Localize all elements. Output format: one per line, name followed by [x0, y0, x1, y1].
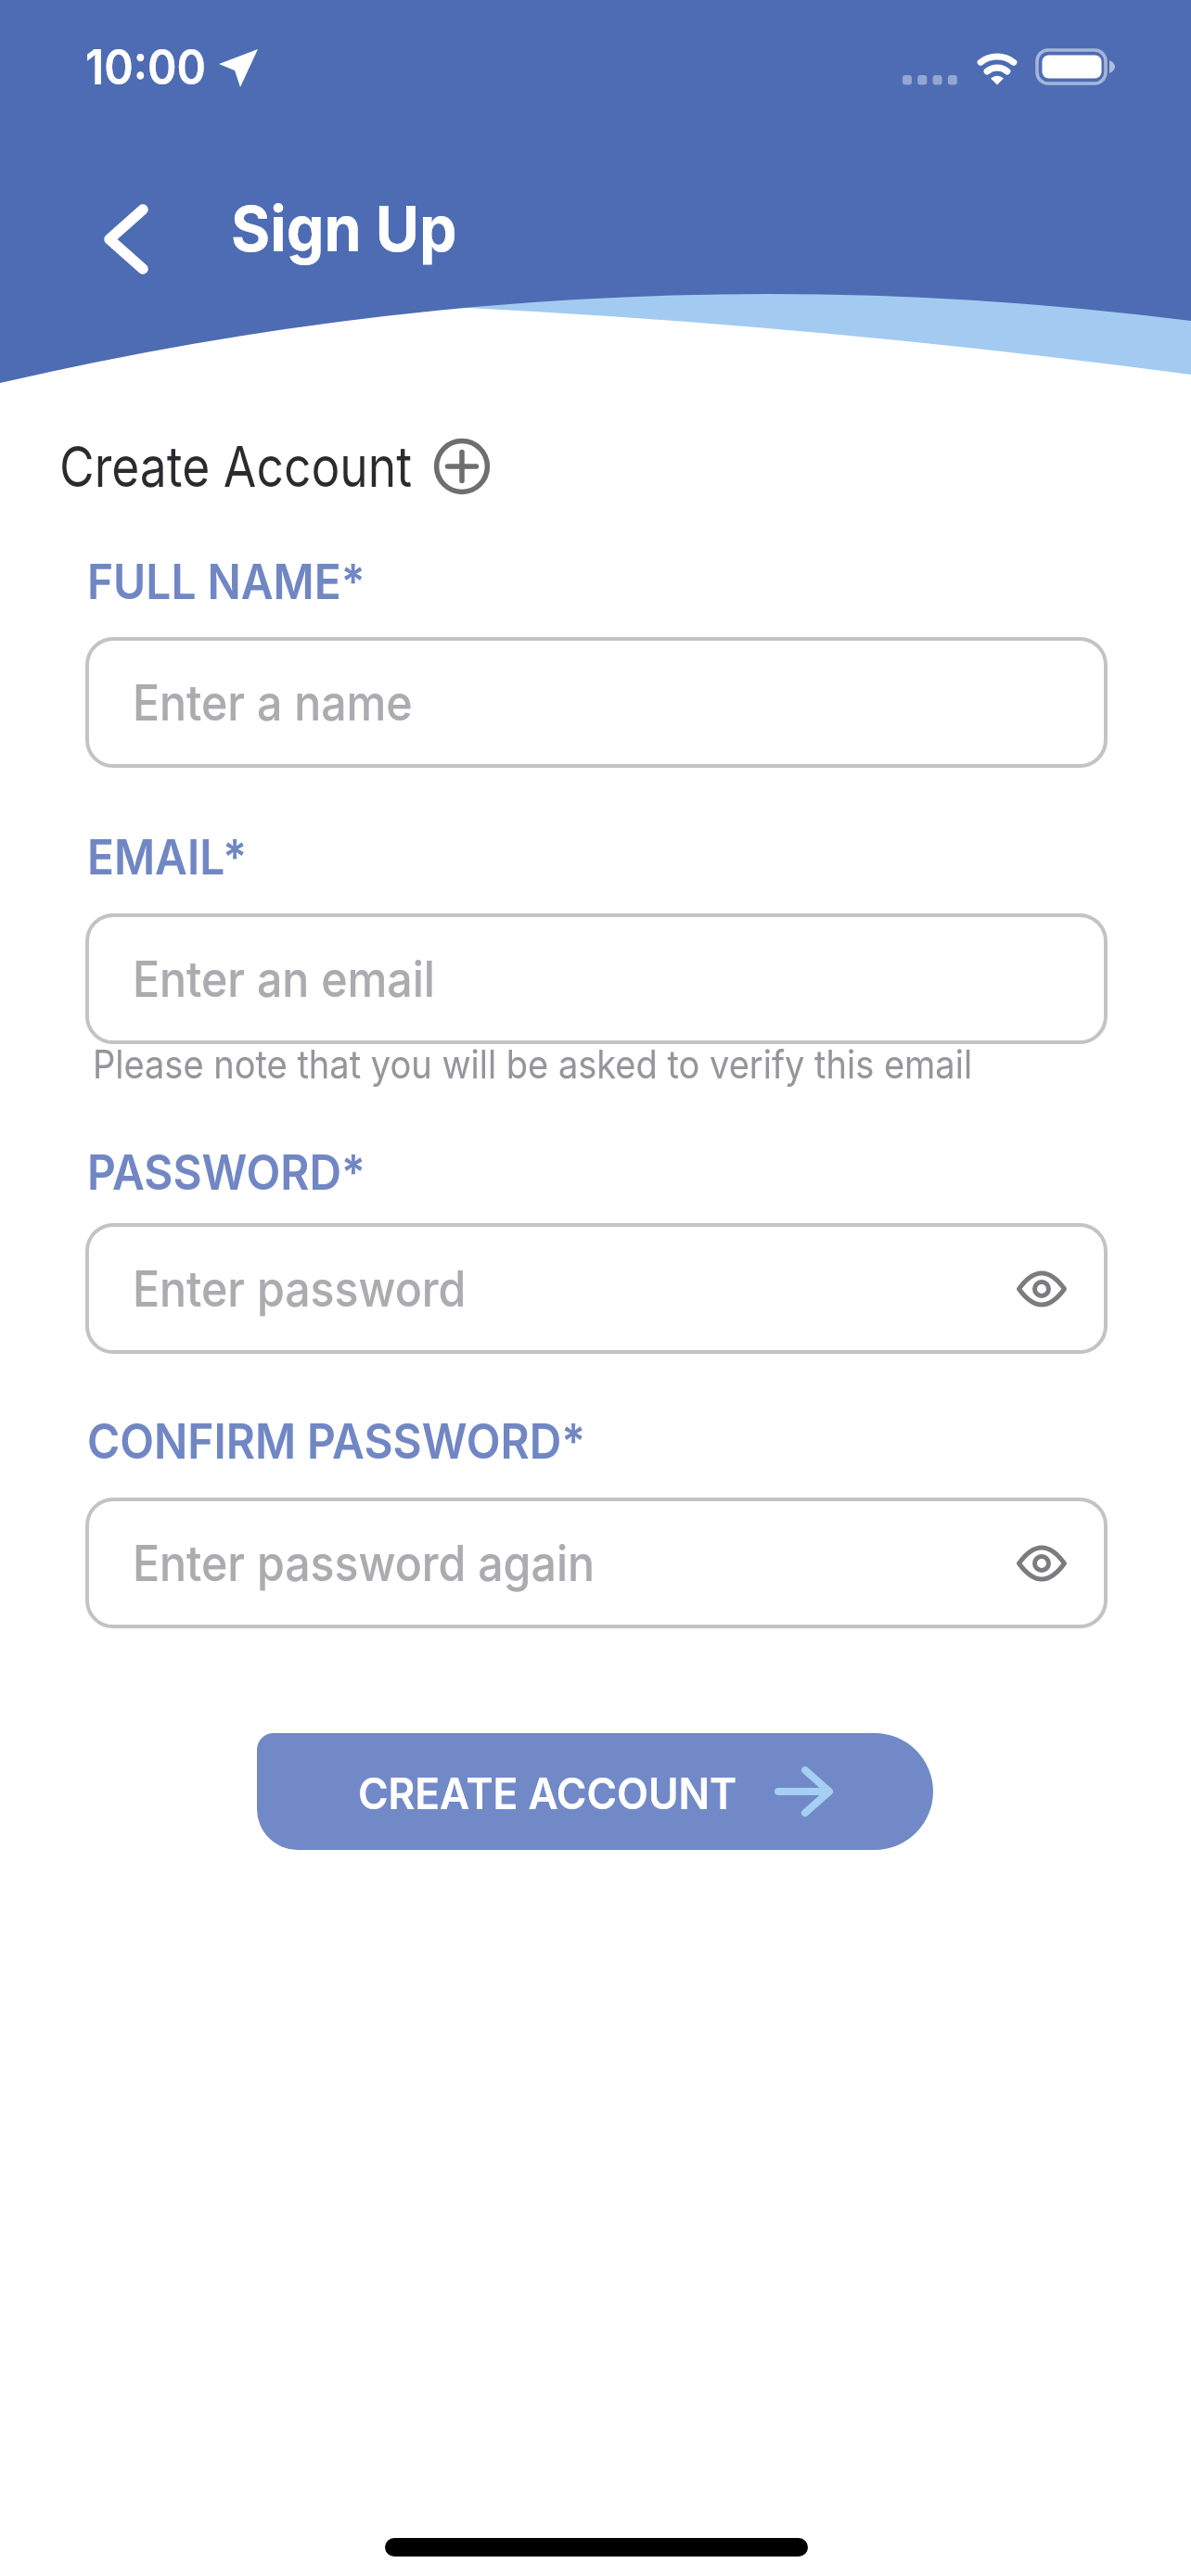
staticText: EMAIL*	[87, 828, 248, 886]
staticText: CONFIRM PASSWORD*	[87, 1412, 586, 1471]
button[interactable]	[1009, 1531, 1074, 1596]
staticText: Enter an email	[133, 950, 436, 1009]
button[interactable]: Enter password	[85, 1223, 1108, 1354]
staticText: Sign Up	[231, 190, 457, 266]
staticText: FULL NAME*	[87, 553, 365, 611]
staticText: Please note that you will be asked to ve…	[93, 1040, 972, 1088]
button[interactable]: CREATE ACCOUNT	[257, 1733, 933, 1850]
button[interactable]	[1009, 1256, 1074, 1321]
button[interactable]	[82, 198, 174, 283]
staticText: Enter a name	[133, 673, 413, 733]
staticText: Create Account	[59, 432, 412, 501]
staticText: CREATE ACCOUNT	[358, 1766, 737, 1819]
staticText: Enter password again	[133, 1534, 595, 1593]
button[interactable]: Enter password again	[85, 1498, 1108, 1628]
staticText: 10:00	[85, 38, 206, 96]
staticText: PASSWORD*	[87, 1143, 366, 1202]
button[interactable]: Enter a name	[85, 637, 1108, 768]
button[interactable]: Enter an email	[85, 913, 1108, 1044]
staticText: Enter password	[133, 1259, 466, 1319]
